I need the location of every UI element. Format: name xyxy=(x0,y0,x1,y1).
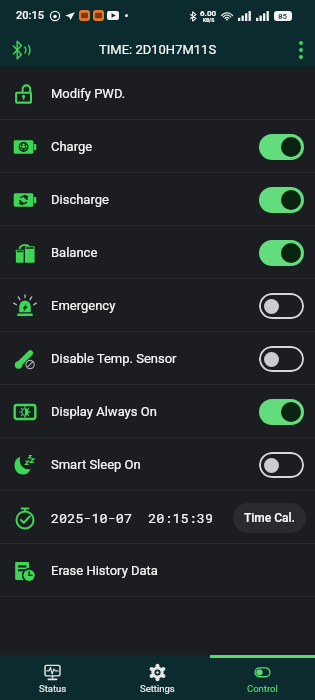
button[interactable]: Control xyxy=(210,658,315,700)
staticText: KB/S xyxy=(203,17,215,23)
button[interactable]: Erase History Data xyxy=(0,544,315,597)
button[interactable]: Charge switch xyxy=(259,134,304,160)
button[interactable]: Disable Temp. Sensor xyxy=(0,332,315,385)
button[interactable]: Smart Sleep On switch xyxy=(259,452,304,478)
button[interactable]: Status xyxy=(0,658,105,700)
button[interactable]: Settings xyxy=(105,658,210,700)
staticText: Modify PWD. xyxy=(51,86,126,101)
button[interactable]: Time Cal. xyxy=(233,503,306,533)
staticText: TIME: 2D10H7M11S xyxy=(99,42,217,57)
staticText: Time Cal. xyxy=(244,511,295,525)
staticText: 2025-10-07 20:15:39 xyxy=(51,509,214,527)
staticText: 6.00 xyxy=(200,9,217,18)
button[interactable]: Display Always On switch xyxy=(259,399,304,425)
button[interactable]: More options xyxy=(295,37,307,63)
staticText: Settings xyxy=(140,683,175,694)
staticText: Discharge xyxy=(51,192,109,207)
staticText: Status xyxy=(39,683,67,694)
other: Bluetooth connected xyxy=(11,39,31,61)
button[interactable]: Balance xyxy=(0,226,315,279)
button[interactable]: Emergency switch xyxy=(259,293,304,319)
staticText: 20:15 xyxy=(16,9,44,22)
button[interactable]: Smart Sleep On xyxy=(0,438,315,491)
staticText: Smart Sleep On xyxy=(51,457,141,472)
staticText: Balance xyxy=(51,245,98,260)
button[interactable]: Discharge switch xyxy=(259,187,304,213)
button[interactable]: Charge xyxy=(0,120,315,173)
staticText: Erase History Data xyxy=(51,563,158,578)
button[interactable]: Modify PWD. xyxy=(0,67,315,120)
button[interactable]: Display Always On xyxy=(0,385,315,438)
staticText: Control xyxy=(247,683,278,694)
button[interactable]: Balance switch xyxy=(259,240,304,266)
button[interactable]: Emergency xyxy=(0,279,315,332)
button[interactable]: Disable Temp. Sensor switch xyxy=(259,346,304,372)
button[interactable]: Discharge xyxy=(0,173,315,226)
staticText: 85 xyxy=(278,12,288,21)
staticText: Disable Temp. Sensor xyxy=(51,351,177,366)
staticText: Charge xyxy=(51,139,93,154)
staticText: Emergency xyxy=(51,298,116,313)
staticText: Display Always On xyxy=(51,404,157,419)
